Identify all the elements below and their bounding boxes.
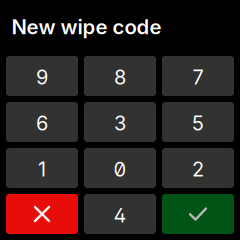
staticText: 9: [36, 65, 48, 89]
staticText: 7: [192, 65, 203, 89]
button[interactable]: 1: [6, 148, 78, 188]
staticText: 6: [36, 111, 48, 135]
button[interactable]: 5: [162, 102, 234, 142]
button[interactable]: Cancel: [6, 194, 78, 234]
button[interactable]: 6: [6, 102, 78, 142]
button[interactable]: 2: [162, 148, 234, 188]
staticText: 5: [192, 111, 204, 135]
button[interactable]: 4: [84, 194, 156, 234]
button[interactable]: 0: [84, 148, 156, 188]
staticText: 4: [113, 203, 126, 227]
button[interactable]: Confirm: [162, 194, 234, 234]
staticText: 3: [114, 111, 126, 135]
staticText: 2: [192, 157, 204, 181]
staticText: 8: [114, 65, 126, 89]
button[interactable]: 8: [84, 56, 156, 96]
staticText: 1: [38, 157, 46, 181]
staticText: New wipe code: [11, 14, 161, 39]
staticText: 0: [113, 157, 126, 181]
button[interactable]: 9: [6, 56, 78, 96]
button[interactable]: 3: [84, 102, 156, 142]
button[interactable]: 7: [162, 56, 234, 96]
